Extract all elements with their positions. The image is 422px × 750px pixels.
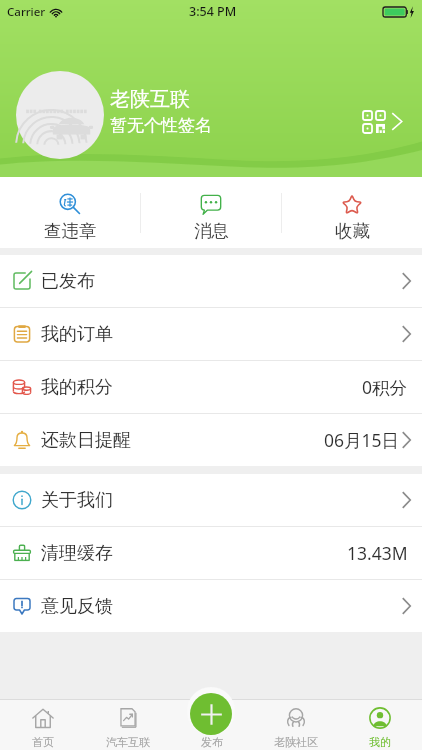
button[interactable]: 汽车互联 <box>85 699 170 750</box>
staticText: 我的 <box>369 735 391 749</box>
button[interactable]: 已发布 <box>0 255 422 307</box>
staticText: 老陕社区 <box>274 735 318 749</box>
button[interactable]: 发布 <box>170 699 254 750</box>
staticText: 查违章 <box>44 220 97 242</box>
staticText: 清理缓存 <box>41 542 113 565</box>
staticText: 关于我们 <box>41 489 113 512</box>
staticText: 汽车互联 <box>106 735 150 749</box>
staticText: 已发布 <box>41 270 95 293</box>
staticText: 收藏 <box>335 220 370 242</box>
staticText: 3:54 PM <box>189 3 237 20</box>
staticText: 我的订单 <box>41 323 113 346</box>
staticText: 首页 <box>32 735 54 749</box>
button[interactable]: 关于我们 <box>0 474 422 526</box>
button[interactable]: Avatar <box>16 71 104 159</box>
button[interactable]: 首页 <box>0 699 85 750</box>
button[interactable]: 清理缓存 <box>0 527 422 579</box>
staticText: 我的积分 <box>41 376 113 399</box>
staticText: 暂无个性签名 <box>110 115 212 136</box>
staticText: Carrier <box>7 4 46 20</box>
staticText: 发布 <box>201 735 223 749</box>
staticText: 0积分 <box>362 375 408 399</box>
button[interactable]: 收藏 <box>282 177 422 248</box>
button[interactable]: 发布 Publish <box>190 693 232 735</box>
staticText: 13.43M <box>347 541 408 565</box>
staticText: 意见反馈 <box>41 595 113 618</box>
button[interactable]: 老陕社区 <box>254 699 338 750</box>
button[interactable]: 我的 <box>338 699 422 750</box>
staticText: 06月15日 <box>324 428 400 452</box>
button[interactable]: 我的订单 <box>0 308 422 360</box>
button[interactable]: 查违章 <box>0 177 140 248</box>
button[interactable]: 消息 <box>141 177 281 248</box>
staticText: 老陕互联 <box>110 87 190 112</box>
button[interactable]: Scan QR code <box>363 111 385 133</box>
button[interactable]: 我的积分 <box>0 361 422 413</box>
staticText: 消息 <box>194 220 229 242</box>
staticText: 还款日提醒 <box>41 429 131 452</box>
button[interactable]: 意见反馈 <box>0 580 422 632</box>
button[interactable]: 还款日提醒 <box>0 414 422 466</box>
